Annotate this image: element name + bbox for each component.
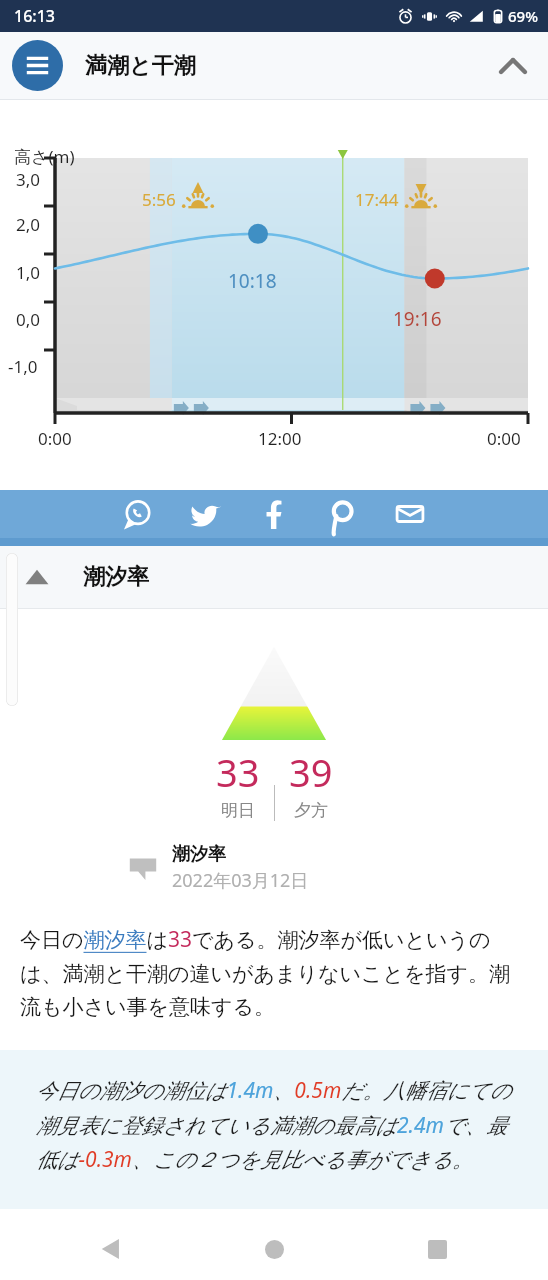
- staticText: 19:16: [393, 306, 442, 332]
- button[interactable]: Facebook: [252, 492, 296, 536]
- staticText: 1,0: [16, 261, 41, 284]
- staticText: 2022年03月12日: [172, 868, 309, 893]
- staticText: 八幡宿の潮汐表に記録された最大の満潮とこれらの: [20, 1233, 509, 1242]
- button[interactable]: WhatsApp: [116, 492, 160, 536]
- staticText: 潮汐率: [83, 563, 149, 591]
- staticText: 2,0: [16, 213, 41, 236]
- staticText: 満潮と干潮: [85, 52, 196, 80]
- staticText: 69%: [508, 6, 538, 26]
- staticText: 0:00: [487, 427, 521, 450]
- staticText: 夕方: [294, 800, 328, 821]
- button[interactable]: 潮汐率: [0, 546, 548, 608]
- staticText: 今日の潮汐率は33である。潮汐率が低いというのは、満潮と干潮の違いがあまりないこ…: [20, 925, 530, 1020]
- button[interactable]: Twitter: [184, 492, 228, 536]
- staticText: 10:18: [228, 268, 277, 294]
- button[interactable]: Recents: [414, 1226, 460, 1272]
- staticText: 潮汐率: [172, 843, 226, 866]
- staticText: 今日の潮汐の潮位は1.4m、0.5mだ。八幡宿にての潮見表に登録されている満潮の…: [36, 1076, 526, 1173]
- button[interactable]: Collapse: [490, 43, 536, 89]
- staticText: 高さ(m): [14, 145, 75, 168]
- staticText: 3,0: [16, 168, 41, 191]
- staticText: 0,0: [16, 308, 41, 331]
- staticText: 16:13: [14, 5, 55, 27]
- staticText: 33: [216, 746, 260, 798]
- staticText: -1,0: [8, 355, 38, 378]
- staticText: 39: [289, 746, 333, 798]
- staticText: 12:00: [258, 427, 302, 450]
- staticText: 5:56: [142, 188, 176, 211]
- button[interactable]: Email: [388, 492, 432, 536]
- staticText: 明日: [221, 800, 255, 821]
- staticText: 17:44: [355, 188, 399, 211]
- button[interactable]: Back: [88, 1226, 134, 1272]
- button[interactable]: Menu: [12, 40, 63, 91]
- staticText: 0:00: [38, 427, 72, 450]
- button[interactable]: Home: [251, 1226, 297, 1272]
- button[interactable]: Pinterest: [320, 492, 364, 536]
